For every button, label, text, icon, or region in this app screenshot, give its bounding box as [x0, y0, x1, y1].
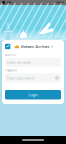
button[interactable]: Login: [5, 90, 61, 99]
staticText: Login: [28, 92, 37, 97]
staticText: Password: [5, 69, 17, 72]
staticText: Vietnam Airlines: [21, 44, 50, 49]
staticText: Enter account: [7, 60, 30, 65]
staticText: Account: [5, 53, 16, 56]
button[interactable]: Vietnam Airlines: [5, 43, 61, 49]
staticText: Enter password: [7, 75, 34, 81]
